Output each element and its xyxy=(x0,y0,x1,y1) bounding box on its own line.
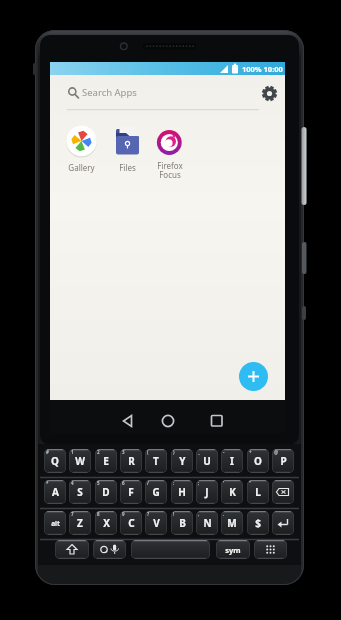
staticText: , xyxy=(198,511,200,517)
staticText: " xyxy=(249,480,252,486)
button[interactable]: P xyxy=(272,449,294,473)
staticText: ( xyxy=(147,449,149,455)
staticText: Focus xyxy=(159,169,181,180)
staticText: M xyxy=(227,516,237,530)
staticText: ? xyxy=(147,511,150,517)
staticText: U xyxy=(203,454,211,468)
button[interactable]: S xyxy=(69,480,91,504)
staticText: S xyxy=(77,485,83,499)
staticText: : xyxy=(173,480,175,486)
staticText: I xyxy=(230,454,234,468)
staticText: X xyxy=(103,516,110,530)
staticText: B xyxy=(179,516,186,530)
staticText: 8 xyxy=(97,511,100,517)
button[interactable] xyxy=(110,403,146,431)
staticText: P xyxy=(280,454,287,468)
staticText: W xyxy=(75,454,85,468)
staticText: E xyxy=(103,454,109,468)
button[interactable]: $ xyxy=(247,511,269,535)
button[interactable]: H xyxy=(171,480,193,504)
staticText: Gallery xyxy=(68,162,95,173)
staticText: L xyxy=(255,485,261,499)
button[interactable]: V xyxy=(145,511,167,535)
staticText: / xyxy=(147,480,149,486)
button[interactable]: E xyxy=(95,449,117,473)
staticText: * xyxy=(46,480,49,486)
button[interactable] xyxy=(254,540,287,559)
staticText: 5 xyxy=(97,480,100,486)
button[interactable]: U xyxy=(196,449,218,473)
staticText: A xyxy=(52,485,59,499)
staticText: alt xyxy=(51,519,60,528)
button[interactable] xyxy=(93,540,126,559)
staticText: $ xyxy=(255,516,261,530)
staticText: + xyxy=(249,449,252,455)
staticText: O xyxy=(254,454,262,468)
staticText: 3 xyxy=(122,449,125,455)
button[interactable]: G xyxy=(145,480,167,504)
staticText: sym xyxy=(225,545,241,555)
staticText: K xyxy=(229,485,236,499)
staticText: 2 xyxy=(97,449,100,455)
staticText: ; xyxy=(198,480,200,486)
staticText: 7 xyxy=(71,511,74,517)
button[interactable]: X xyxy=(95,511,117,535)
button[interactable]: C xyxy=(120,511,142,535)
staticText: T xyxy=(153,454,159,468)
button[interactable] xyxy=(198,403,234,431)
staticText: Search Apps xyxy=(82,86,137,99)
staticText: . xyxy=(223,511,225,517)
staticText: V xyxy=(153,516,160,530)
staticText: Files xyxy=(119,162,136,173)
button[interactable]: I xyxy=(221,449,243,473)
staticText: 9 xyxy=(122,511,125,517)
button[interactable]: alt xyxy=(44,511,66,535)
button[interactable]: Y xyxy=(171,449,193,473)
staticText: ) xyxy=(173,449,175,455)
staticText: Y xyxy=(179,454,186,468)
staticText: N xyxy=(203,516,212,530)
staticText: Q xyxy=(51,454,59,468)
staticText: 100% 10:00 xyxy=(242,64,283,74)
staticText: J xyxy=(205,485,209,499)
button[interactable]: Q xyxy=(44,449,66,473)
button[interactable]: B xyxy=(171,511,193,535)
staticText: @ xyxy=(274,449,279,455)
button[interactable] xyxy=(55,540,89,559)
button[interactable]: N xyxy=(196,511,218,535)
button[interactable] xyxy=(272,511,294,535)
staticText: 4 xyxy=(71,480,74,486)
staticText: ' xyxy=(223,480,225,486)
button[interactable] xyxy=(239,362,268,391)
staticText: Z xyxy=(77,516,83,530)
button[interactable]: Z xyxy=(69,511,91,535)
button[interactable]: A xyxy=(44,480,66,504)
button[interactable]: R xyxy=(120,449,142,473)
button[interactable]: sym xyxy=(216,540,250,559)
button[interactable]: L xyxy=(247,480,269,504)
button[interactable]: T xyxy=(145,449,167,473)
button[interactable]: W xyxy=(69,449,91,473)
staticText: 1 xyxy=(71,449,74,455)
button[interactable] xyxy=(131,540,210,559)
staticText: D xyxy=(102,485,110,499)
button[interactable] xyxy=(150,403,186,431)
button[interactable]: K xyxy=(221,480,243,504)
staticText: F xyxy=(128,485,134,499)
button[interactable] xyxy=(50,83,255,111)
staticText: _ xyxy=(198,449,200,455)
button[interactable] xyxy=(272,480,294,504)
staticText: H xyxy=(178,485,186,499)
button[interactable]: M xyxy=(221,511,243,535)
button[interactable]: J xyxy=(196,480,218,504)
button[interactable]: D xyxy=(95,480,117,504)
button[interactable]: O xyxy=(247,449,269,473)
button[interactable]: F xyxy=(120,480,142,504)
staticText: G xyxy=(152,485,160,499)
staticText: C xyxy=(128,516,135,530)
staticText: 6 xyxy=(122,480,125,486)
staticText: R xyxy=(128,454,135,468)
